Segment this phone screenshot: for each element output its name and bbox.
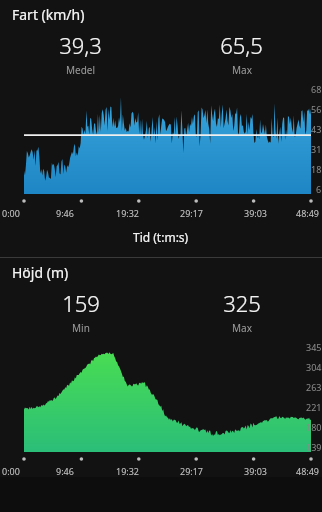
button[interactable]: 159 (0, 288, 161, 335)
staticText: 139 (306, 441, 322, 453)
staticText: 325 (223, 288, 261, 318)
staticText: 0:00 (2, 207, 20, 219)
staticText: 29:17 (180, 207, 204, 219)
staticText: 180 (306, 421, 322, 433)
staticText: 39:03 (244, 207, 268, 219)
staticText: 221 (306, 401, 322, 413)
staticText: Max (232, 63, 252, 77)
staticText: 263 (306, 381, 322, 393)
staticText: 18 (311, 163, 322, 175)
staticText: 68 (311, 83, 322, 95)
staticText: 56 (311, 103, 322, 115)
staticText: 65,5 (220, 30, 263, 60)
staticText: 43 (311, 123, 322, 135)
button[interactable]: Fart (km/h) (0, 0, 322, 26)
staticText: 48:49 (296, 465, 320, 477)
staticText: 6 (316, 183, 322, 195)
button[interactable]: 325 (161, 288, 322, 335)
staticText: 159 (62, 288, 100, 318)
button[interactable]: 65,5 (161, 30, 322, 77)
staticText: Max (232, 321, 252, 335)
staticText: 345 (306, 341, 322, 353)
staticText: 9:46 (56, 207, 74, 219)
button[interactable]: 39,3 (0, 30, 161, 77)
staticText: 0:00 (2, 465, 20, 477)
staticText: 39:03 (244, 465, 268, 477)
staticText: 9:46 (56, 465, 74, 477)
staticText: 39,3 (59, 30, 102, 60)
staticText: Fart (km/h) (12, 5, 85, 24)
staticText: Höjd (m) (12, 263, 69, 282)
staticText: 31 (311, 143, 322, 155)
staticText: 48:49 (296, 207, 320, 219)
staticText: 29:17 (180, 465, 204, 477)
staticText: 304 (306, 361, 322, 373)
staticText: Tid (t:m:s) (133, 229, 189, 245)
staticText: Medel (66, 63, 96, 77)
button[interactable]: Höjd (m) (0, 258, 322, 284)
staticText: 19:32 (116, 207, 140, 219)
staticText: Min (72, 321, 90, 335)
staticText: 19:32 (116, 465, 140, 477)
